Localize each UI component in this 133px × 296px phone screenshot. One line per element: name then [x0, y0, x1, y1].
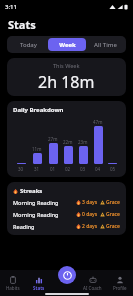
staticText: 2 days: [82, 223, 98, 230]
staticText: Habits: [6, 285, 20, 291]
staticText: 27m: [48, 136, 58, 142]
button[interactable]: AI Coach: [79, 270, 106, 296]
staticText: 01: [50, 166, 56, 172]
staticText: 31: [34, 166, 40, 172]
staticText: 05: [110, 166, 116, 172]
staticText: Grace: [106, 223, 120, 230]
staticText: 3:11: [5, 3, 17, 11]
staticText: 47m: [93, 119, 103, 125]
staticText: Stats: [8, 17, 36, 32]
staticText: Today: [20, 41, 37, 49]
button[interactable]: Stats: [26, 270, 52, 296]
staticText: All Time: [94, 41, 117, 49]
button[interactable]: Morning Reading: [13, 199, 120, 206]
button[interactable]: Habits: [0, 270, 26, 296]
staticText: Morning Reading: [13, 211, 59, 218]
button[interactable]: Week: [48, 38, 86, 51]
staticText: 2h 18m: [38, 71, 95, 93]
button[interactable]: Start timer: [58, 266, 76, 284]
staticText: Profile: [113, 285, 127, 291]
staticText: AI Coach: [83, 285, 102, 291]
staticText: Grace: [106, 211, 120, 218]
staticText: Streaks: [20, 187, 43, 195]
staticText: 0 days: [82, 211, 98, 218]
button[interactable]: All Time: [86, 38, 124, 51]
staticText: Daily Breakdown: [13, 106, 64, 114]
staticText: Reading: [13, 223, 35, 230]
staticText: 02: [65, 166, 71, 172]
staticText: 22m: [63, 139, 73, 145]
staticText: Week: [59, 41, 76, 49]
staticText: Morning Reading: [13, 199, 59, 206]
staticText: 23m: [78, 139, 88, 145]
staticText: 30: [18, 166, 24, 172]
staticText: Grace: [106, 199, 120, 206]
button[interactable]: This Week: [7, 58, 126, 96]
button[interactable]: Reading: [13, 223, 120, 230]
button[interactable]: Morning Reading: [13, 211, 120, 218]
staticText: 3 days: [82, 199, 98, 206]
staticText: This Week: [53, 62, 80, 69]
staticText: Stats: [33, 285, 45, 291]
staticText: 03: [80, 166, 86, 172]
staticText: 04: [95, 166, 101, 172]
staticText: 11m: [32, 146, 42, 152]
button[interactable]: Profile: [106, 270, 133, 296]
button[interactable]: Today: [9, 38, 48, 51]
